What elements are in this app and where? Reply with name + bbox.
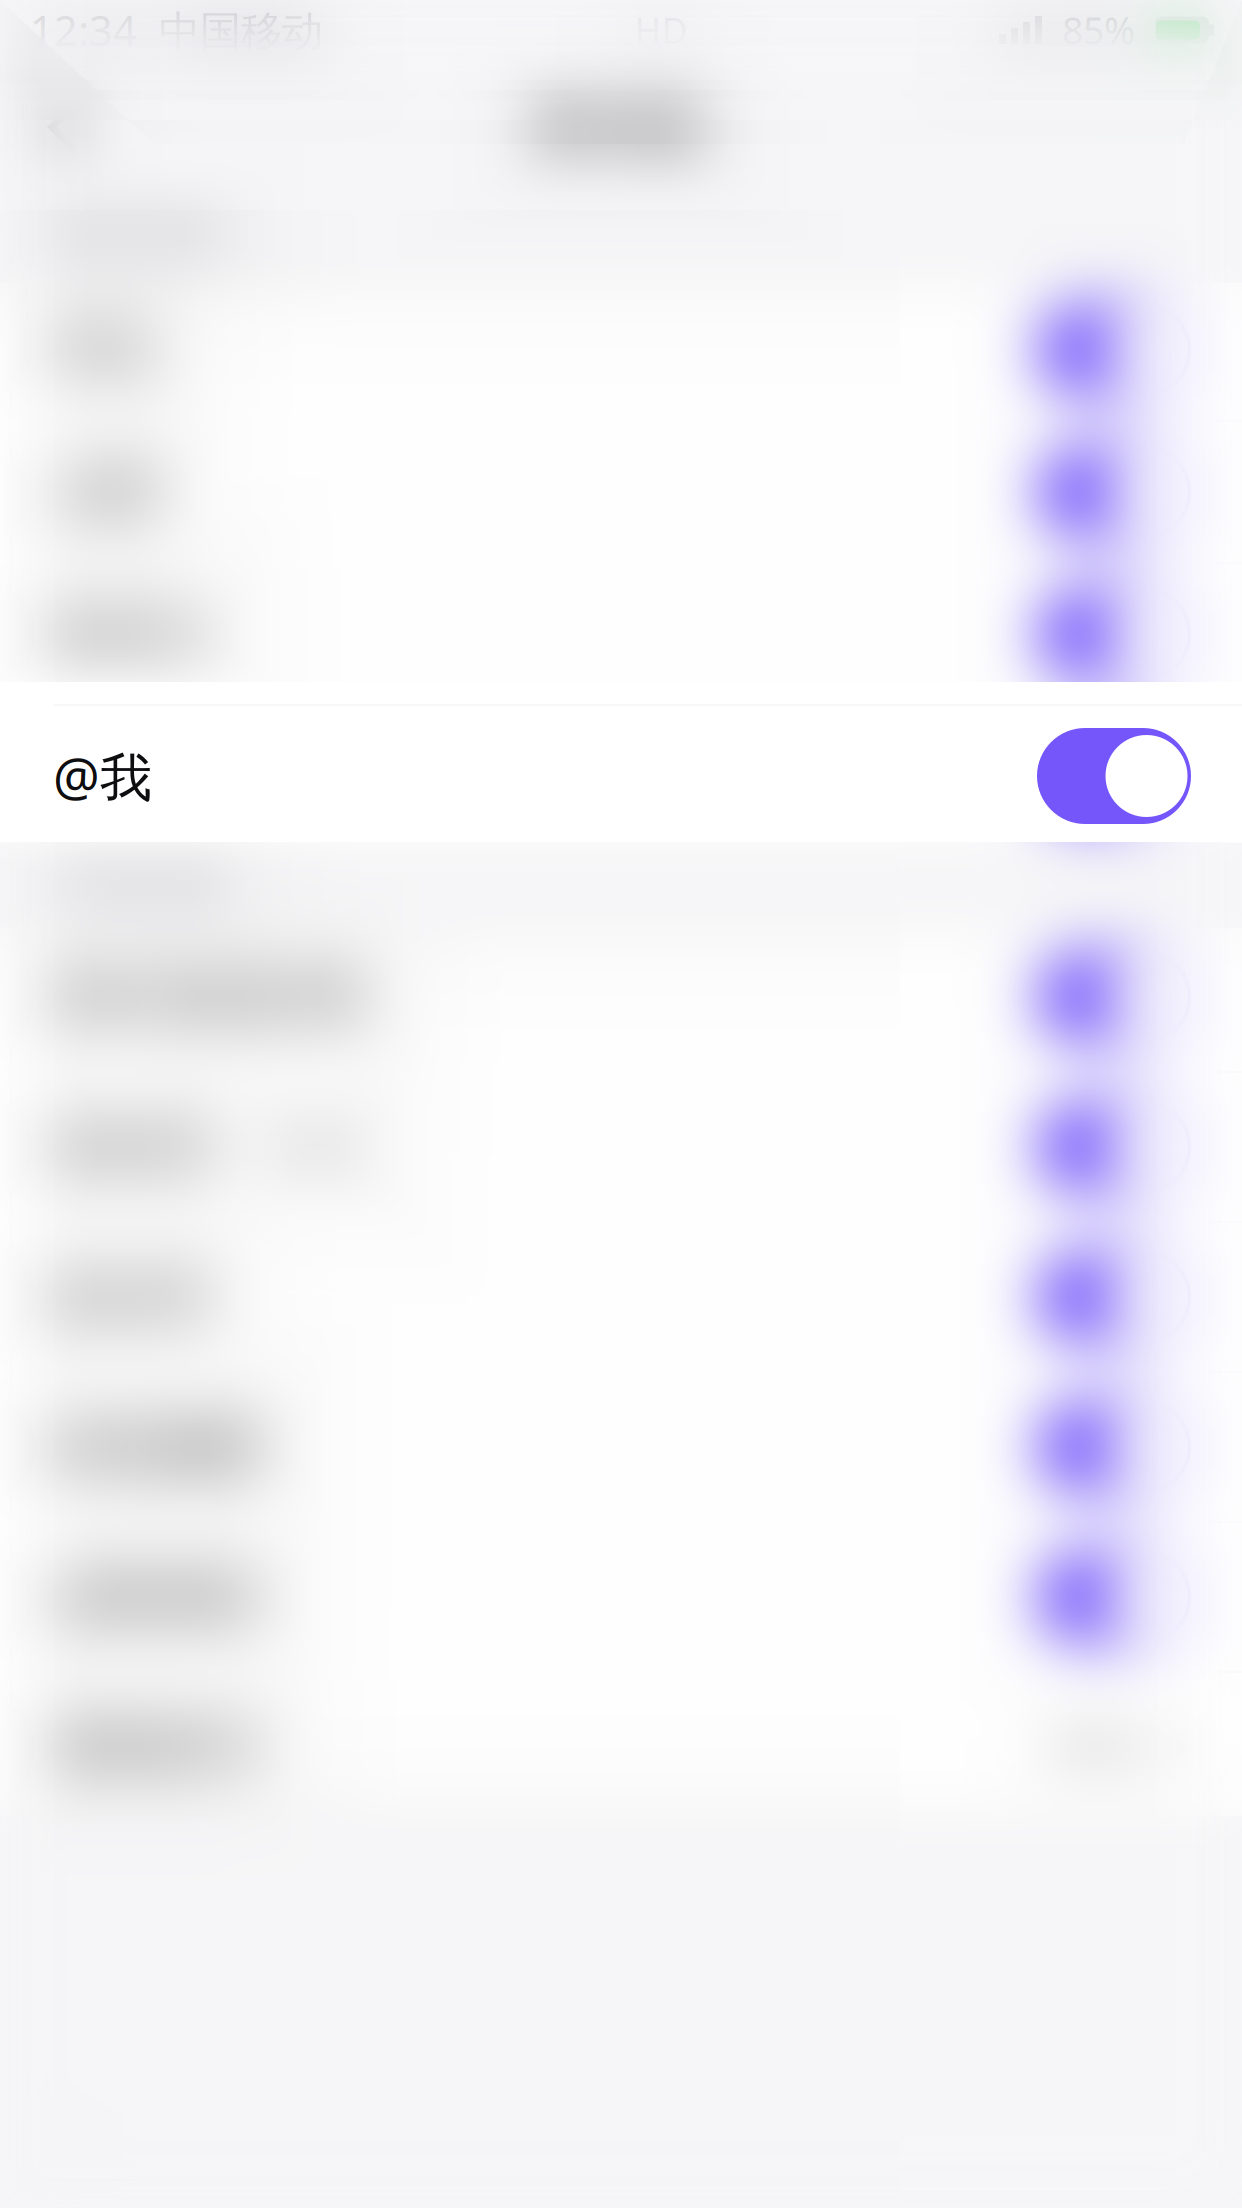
staticText: 免打扰 <box>53 1115 209 1179</box>
button[interactable]: 桌面角标 <box>0 1523 1242 1671</box>
staticText: 提示音 <box>53 1265 209 1329</box>
staticText: 85% <box>1042 5 1155 55</box>
staticText: 显示消息详情 <box>53 965 365 1029</box>
staticText: 点赞 <box>53 460 157 524</box>
staticText: 新消息 <box>535 92 706 162</box>
button[interactable]: 振动提醒 <box>0 1373 1242 1521</box>
button[interactable]: 通知样式 <box>0 1673 1242 1821</box>
staticText: @我 <box>53 741 152 811</box>
button[interactable]: 新关注 <box>0 564 1242 704</box>
button[interactable]: Back <box>0 60 112 194</box>
button[interactable]: 点赞 <box>0 422 1242 562</box>
staticText: 振动提醒 <box>53 1415 261 1479</box>
button[interactable]: 显示消息详情 <box>0 923 1242 1071</box>
staticText: 评论 <box>53 318 157 382</box>
button[interactable]: 提示音 <box>0 1223 1242 1371</box>
staticText: 12:34 中国移动 <box>30 3 323 57</box>
staticText: 新关注 <box>53 602 209 666</box>
button[interactable]: 评论 <box>0 280 1242 420</box>
button[interactable]: @我 <box>0 706 1242 846</box>
staticText: 桌面角标 <box>53 1565 261 1629</box>
staticText: 通知样式 <box>53 1715 261 1779</box>
button[interactable]: 免打扰 <box>0 1073 1242 1221</box>
